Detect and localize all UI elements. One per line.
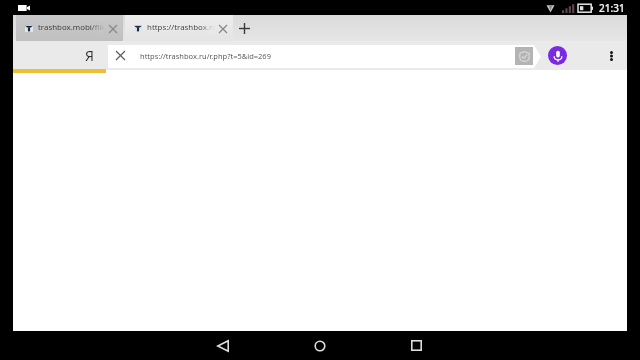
button[interactable]: Back — [200, 331, 245, 360]
staticText: https://trashbox.ru/r.php — [147, 22, 214, 33]
staticText: trashbox.mobi/files/info — [38, 22, 104, 33]
button[interactable]: New tab — [233, 15, 255, 41]
staticText: https://trashbox.ru/r.php?t=5&id=269 — [140, 51, 271, 61]
button[interactable]: https://trashbox.ru/r.php — [125, 15, 233, 41]
button[interactable]: Home — [297, 331, 342, 360]
button[interactable]: Close tab — [214, 20, 231, 37]
button[interactable]: Voice search — [544, 41, 571, 70]
button[interactable]: Page info — [505, 43, 542, 68]
button[interactable]: trashbox.mobi/files/info — [16, 15, 123, 41]
staticText: Я — [85, 46, 94, 65]
button[interactable]: Close tab — [104, 20, 121, 37]
button[interactable]: More options — [597, 41, 625, 70]
button[interactable]: Recent apps — [394, 331, 439, 360]
button[interactable]: Я — [72, 41, 107, 70]
button[interactable]: Stop loading — [112, 43, 128, 68]
staticText: 21:31 — [599, 1, 625, 15]
